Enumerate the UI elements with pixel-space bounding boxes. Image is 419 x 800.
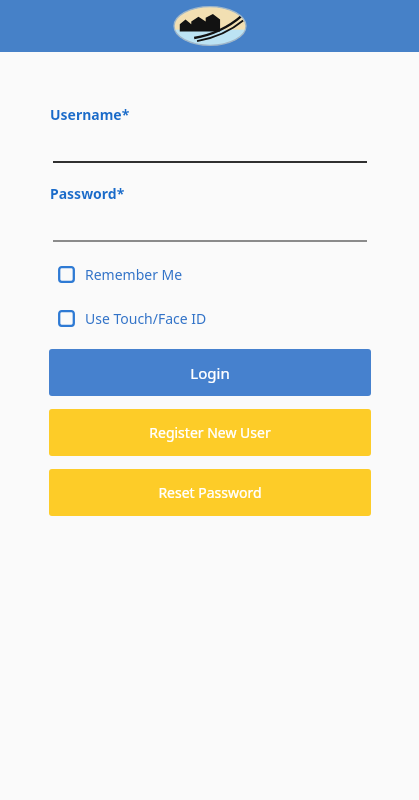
button[interactable]: Use Touch/Face ID [58,307,207,329]
button[interactable]: Register New User [49,409,371,456]
button[interactable]: Reset Password [49,469,371,516]
button[interactable]: Login [49,349,371,396]
staticText: Remember Me [85,265,183,284]
other: App logo [174,3,246,49]
button[interactable]: Remember Me [58,263,183,285]
staticText: Reset Password [158,483,262,502]
staticText: Username* [50,105,130,124]
staticText: Use Touch/Face ID [85,309,207,328]
staticText: Login [190,363,230,383]
staticText: Password* [50,184,125,203]
staticText: Register New User [149,423,271,442]
